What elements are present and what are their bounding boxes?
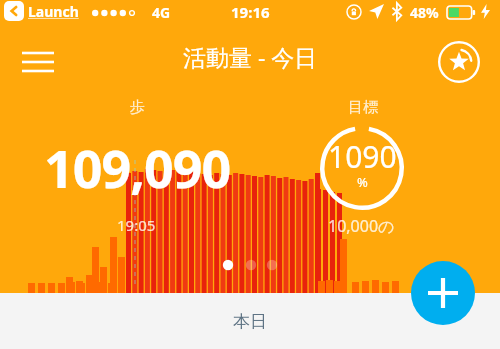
staticText: 歩 bbox=[130, 98, 145, 117]
staticText: 本日 bbox=[233, 311, 267, 332]
staticText: Launch bbox=[28, 2, 79, 21]
staticText: % bbox=[357, 173, 368, 191]
staticText: 10,000の bbox=[328, 215, 395, 237]
button[interactable]: Add bbox=[411, 261, 475, 325]
staticText: 1090 bbox=[328, 136, 397, 177]
staticText: 19:05 bbox=[117, 215, 156, 235]
staticText: 4G bbox=[152, 3, 171, 22]
button[interactable]: Favorites bbox=[434, 37, 484, 87]
staticText: 活動量 - 今日 bbox=[183, 41, 318, 72]
button[interactable]: 本日 bbox=[0, 293, 500, 349]
button[interactable]: Launch bbox=[4, 1, 79, 21]
staticText: 目標 bbox=[348, 98, 378, 117]
button[interactable]: Menu bbox=[14, 38, 62, 86]
staticText: 109,090 bbox=[44, 132, 231, 203]
button[interactable]: Goal progress bbox=[320, 126, 404, 210]
staticText: 48% bbox=[410, 3, 439, 22]
staticText: 19:16 bbox=[231, 2, 270, 22]
